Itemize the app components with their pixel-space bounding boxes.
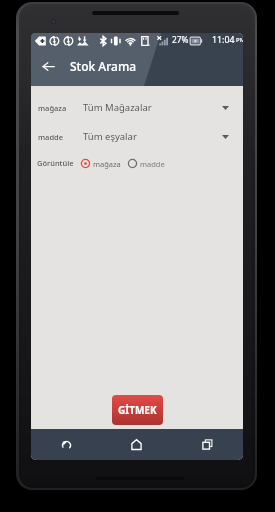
staticText: madde bbox=[140, 159, 165, 169]
staticText: Tüm Mağazalar bbox=[83, 101, 152, 114]
button[interactable]: mağaza bbox=[31, 93, 243, 122]
button[interactable]: Back bbox=[31, 429, 101, 460]
button[interactable]: Navigate up bbox=[31, 46, 65, 86]
button[interactable]: madde bbox=[127, 158, 165, 169]
staticText: mağaza bbox=[38, 103, 67, 113]
button[interactable]: GİTMEK bbox=[112, 395, 163, 425]
staticText: GİTMEK bbox=[118, 403, 157, 417]
staticText: Tüm eşyalar bbox=[83, 130, 137, 143]
button[interactable]: mağaza bbox=[80, 158, 121, 169]
staticText: 27% bbox=[172, 34, 189, 45]
staticText: madde bbox=[38, 132, 63, 142]
button[interactable]: Home bbox=[101, 429, 172, 460]
button[interactable]: Recent apps bbox=[172, 429, 243, 460]
staticText: Görüntüle bbox=[37, 158, 74, 168]
button[interactable]: madde bbox=[31, 122, 243, 151]
staticText: Stok Arama bbox=[70, 58, 137, 74]
staticText: 11:04 bbox=[212, 34, 235, 46]
staticText: mağaza bbox=[93, 159, 121, 169]
staticText: PM bbox=[236, 36, 243, 44]
